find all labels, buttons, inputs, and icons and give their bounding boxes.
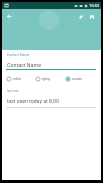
- button[interactable]: custom: [65, 76, 83, 82]
- button[interactable]: Save: [84, 9, 99, 24]
- button[interactable]: typing: [35, 76, 51, 82]
- staticText: Contact Name: [7, 62, 41, 68]
- staticText: Contact Name: [7, 53, 30, 57]
- staticText: typing: [42, 77, 51, 81]
- button[interactable]: Edit: [73, 9, 88, 24]
- staticText: last seen today at 8:00: [7, 98, 59, 104]
- button[interactable]: online: [6, 76, 22, 82]
- staticText: online: [13, 77, 22, 81]
- staticText: last seen: [7, 89, 20, 93]
- staticText: 15:53: [89, 3, 99, 8]
- button[interactable]: Back: [2, 9, 17, 24]
- staticText: custom: [72, 77, 83, 81]
